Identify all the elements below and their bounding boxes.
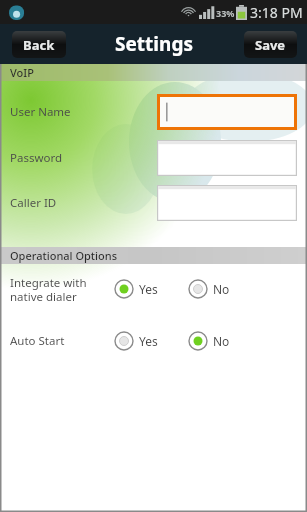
staticText: No — [213, 333, 230, 349]
staticText: VoIP — [10, 65, 34, 80]
button[interactable]: No — [188, 327, 230, 355]
button[interactable] — [157, 140, 297, 176]
button[interactable]: Back — [12, 31, 66, 58]
button[interactable] — [157, 185, 297, 221]
staticText: Operational Options — [10, 248, 117, 263]
staticText: Save — [255, 36, 286, 54]
staticText: Integrate with native dialer — [10, 275, 114, 304]
staticText: 33% — [216, 7, 235, 19]
staticText: Caller ID — [10, 195, 57, 211]
staticText: Back — [23, 36, 55, 54]
staticText: Password — [10, 150, 63, 166]
staticText: Auto Start — [10, 333, 114, 349]
button[interactable]: No — [188, 275, 230, 303]
staticText: User Name — [10, 104, 71, 120]
button[interactable]: Yes — [114, 327, 158, 355]
staticText: 3:18 PM — [250, 3, 303, 22]
staticText: No — [213, 281, 230, 297]
staticText: Settings — [115, 31, 193, 57]
button[interactable]: Save — [244, 31, 297, 58]
button[interactable] — [157, 94, 297, 130]
staticText: Yes — [139, 333, 158, 349]
staticText: Yes — [139, 281, 158, 297]
button[interactable]: Yes — [114, 275, 158, 303]
